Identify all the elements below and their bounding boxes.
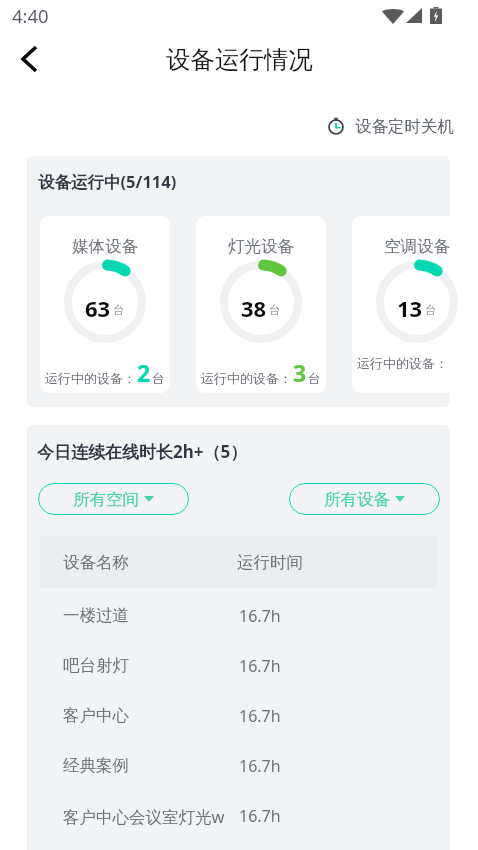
button[interactable]: 客户中心会议室灯光w	[40, 790, 437, 840]
staticText: 16.7h	[239, 705, 281, 727]
button[interactable]: 设备定时关机	[328, 110, 454, 142]
button[interactable]: 空调设备	[352, 216, 478, 393]
staticText: 台	[308, 370, 321, 386]
button[interactable]: 灯光设备	[196, 216, 326, 393]
button[interactable]: Back	[4, 34, 54, 84]
staticText: 16.7h	[239, 805, 281, 827]
button[interactable]: 一楼过道	[40, 590, 437, 640]
staticText: 16.7h	[239, 755, 281, 777]
staticText: 设备运行情况	[166, 44, 313, 75]
staticText: 台	[152, 370, 165, 386]
staticText: 灯光设备	[228, 236, 294, 257]
staticText: 今日连续在线时长2h+（5）	[37, 440, 248, 463]
staticText: 3	[293, 357, 307, 388]
staticText: 空调设备	[384, 236, 450, 257]
staticText: 4:40	[12, 3, 49, 28]
staticText: 16.7h	[239, 655, 281, 677]
staticText: 设备名称	[63, 552, 129, 573]
button[interactable]: 媒体设备	[40, 216, 170, 393]
button[interactable]: 所有设备	[289, 483, 440, 515]
staticText: 媒体设备	[72, 236, 138, 257]
staticText: 16.7h	[239, 605, 281, 627]
staticText: 吧台射灯	[63, 655, 129, 676]
staticText: 台	[113, 303, 125, 317]
staticText: 运行中的设备：	[201, 370, 292, 386]
button[interactable]: 客户中心	[40, 690, 437, 740]
staticText: 所有空间	[73, 489, 139, 510]
staticText: 运行时间	[237, 552, 303, 573]
staticText: 设备运行中(5/114)	[38, 170, 177, 193]
staticText: 客户中心	[63, 705, 129, 726]
button[interactable]: 所有空间	[38, 483, 189, 515]
staticText: 38	[241, 293, 267, 323]
staticText: 63	[85, 293, 111, 323]
button[interactable]: 经典案例	[40, 740, 437, 790]
staticText: 一楼过道	[63, 605, 129, 626]
staticText: 台	[269, 303, 281, 317]
button[interactable]: 吧台射灯	[40, 640, 437, 690]
staticText: 台	[425, 303, 437, 317]
staticText: 经典案例	[63, 755, 129, 776]
staticText: 所有设备	[324, 489, 390, 510]
staticText: 2	[137, 357, 151, 388]
staticText: 13	[397, 293, 423, 323]
staticText: 运行中的设备：	[357, 355, 448, 371]
staticText: 运行中的设备：	[45, 370, 136, 386]
staticText: 客户中心会议室灯光w	[63, 805, 225, 828]
staticText: 设备定时关机	[355, 116, 454, 137]
